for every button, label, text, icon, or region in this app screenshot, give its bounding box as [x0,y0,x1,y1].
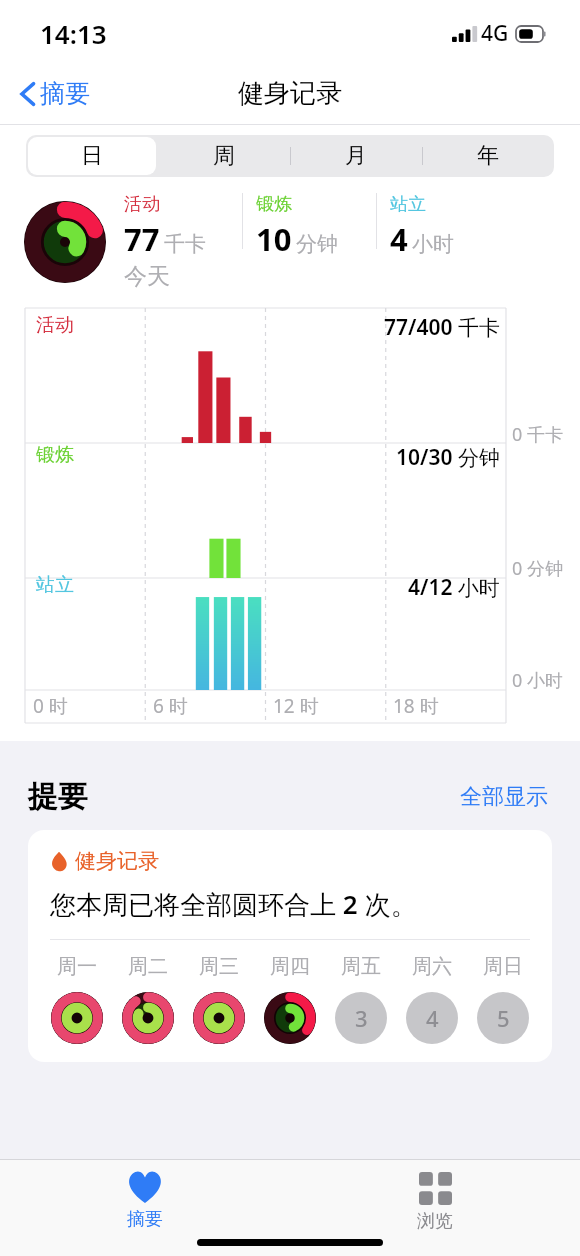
staticText: 健身记录 [75,848,159,874]
staticText: 0 时 [33,693,68,719]
button[interactable]: 周五 [325,954,396,1044]
button[interactable]: 摘要 [14,72,96,115]
staticText: 周三 [199,954,239,979]
staticText: 12 时 [273,693,319,719]
staticText: 锻炼 [256,193,292,216]
staticText: 站立 [36,573,74,597]
staticText: 站立 [390,193,426,216]
staticText: 周 [213,142,235,170]
staticText: 77 [124,218,160,260]
button[interactable]: 周四 [254,954,325,1044]
staticText: 年 [477,142,499,170]
staticText: 18 时 [393,693,439,719]
staticText: 摘要 [40,78,90,109]
button[interactable]: 周三 [183,954,254,1044]
staticText: 周六 [412,954,452,979]
staticText: 您本周已将全部圆环合上 2 次。 [50,886,417,922]
button[interactable]: 周六 [396,954,467,1044]
button[interactable]: 健身记录 [28,830,552,1062]
button[interactable]: 月 [290,135,422,177]
staticText: 10/30 分钟 [396,443,500,472]
staticText: 活动 [36,313,74,337]
staticText: 周一 [57,954,97,979]
staticText: 锻炼 [36,443,74,467]
staticText: 周日 [483,954,523,979]
staticText: 日 [81,142,103,170]
staticText: 摘要 [127,1208,163,1231]
staticText: 77/400 千卡 [384,313,500,342]
staticText: 4 [426,1003,439,1033]
staticText: 周二 [128,954,168,979]
staticText: 全部显示 [460,783,548,811]
staticText: 小时 [412,231,454,257]
staticText: 健身记录 [238,77,342,110]
button[interactable]: 周日 [467,954,538,1044]
staticText: 浏览 [417,1210,453,1233]
staticText: 0 分钟 [512,556,563,581]
staticText: 4G [481,19,509,48]
button[interactable]: 周二 [112,954,183,1044]
staticText: 周四 [270,954,310,979]
button[interactable]: 周一 [42,954,112,1044]
staticText: 今天 [124,262,170,291]
staticText: 周五 [341,954,381,979]
button[interactable]: 周 [158,135,290,177]
staticText: 月 [345,142,367,170]
staticText: 4 [390,218,408,260]
staticText: 6 时 [153,693,188,719]
staticText: 0 小时 [512,668,563,693]
button[interactable]: 浏览 [290,1160,580,1233]
staticText: 分钟 [296,231,338,257]
button[interactable]: 摘要 [0,1160,290,1231]
staticText: 活动 [124,193,160,216]
staticText: 千卡 [164,231,206,257]
staticText: 10 [256,218,292,260]
staticText: 提要 [28,778,88,816]
staticText: 0 千卡 [512,422,563,447]
button[interactable]: 年 [422,135,554,177]
staticText: 4/12 小时 [408,573,500,602]
button[interactable]: 全部显示 [456,779,552,815]
staticText: 14:13 [40,16,107,51]
staticText: 3 [355,1003,368,1033]
button[interactable]: 日 [26,135,158,177]
staticText: 5 [497,1003,510,1033]
